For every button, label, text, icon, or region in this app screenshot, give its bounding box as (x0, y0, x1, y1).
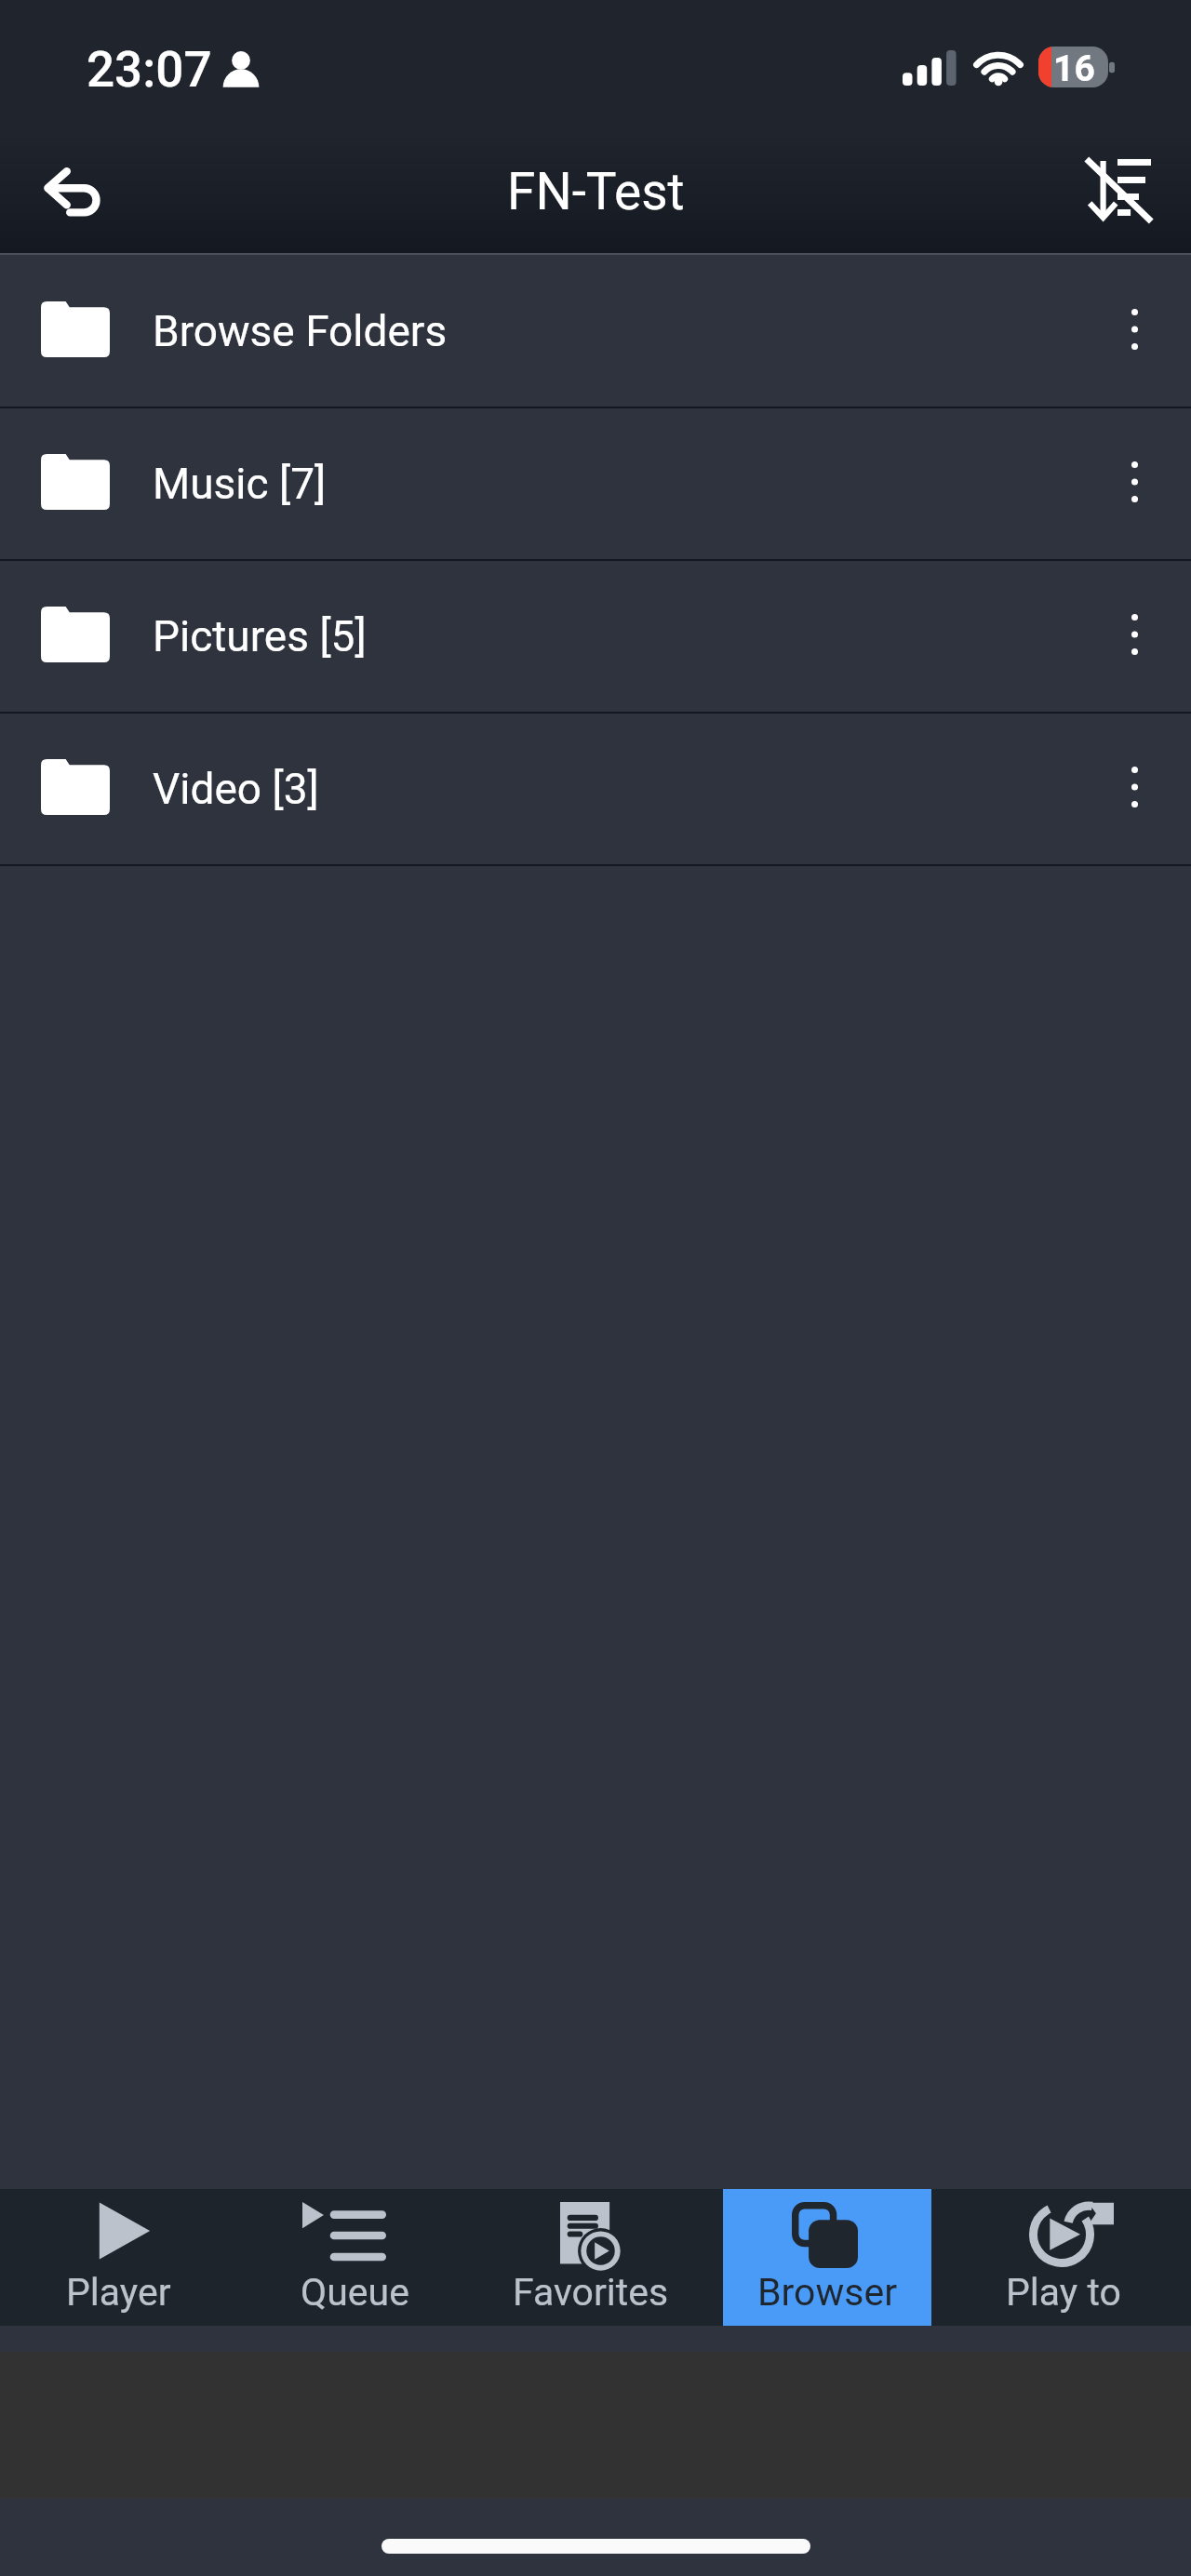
button[interactable]: Player (14, 2189, 222, 2326)
staticText: FN-Test (507, 162, 685, 221)
button[interactable]: More options (1077, 255, 1191, 404)
button[interactable]: More options (1077, 560, 1191, 709)
staticText: 16 (1053, 47, 1095, 88)
button[interactable]: Browser (723, 2189, 931, 2326)
button[interactable]: More options (1077, 713, 1191, 861)
staticText: Music [7] (153, 459, 327, 509)
button[interactable]: Play to (959, 2189, 1168, 2326)
button[interactable]: Pictures [5] (0, 560, 1191, 712)
staticText: Player (66, 2270, 171, 2315)
staticText: Browser (757, 2270, 898, 2315)
button[interactable]: Video [3] (0, 713, 1191, 864)
staticText: 23:07 (87, 41, 212, 99)
button[interactable]: Sorting disabled (1063, 136, 1174, 247)
staticText: Favorites (513, 2270, 669, 2315)
button[interactable]: Favorites (487, 2189, 695, 2326)
button[interactable]: More options (1077, 407, 1191, 556)
staticText: Browse Folders (153, 306, 448, 356)
button[interactable]: Browse Folders (0, 255, 1191, 407)
staticText: Video [3] (153, 764, 319, 814)
button[interactable]: Queue (250, 2189, 459, 2326)
staticText: Queue (301, 2270, 409, 2315)
staticText: Play to (1006, 2270, 1121, 2315)
staticText: Pictures [5] (153, 611, 367, 661)
button[interactable]: Music [7] (0, 407, 1191, 559)
button[interactable]: Back (17, 136, 128, 247)
